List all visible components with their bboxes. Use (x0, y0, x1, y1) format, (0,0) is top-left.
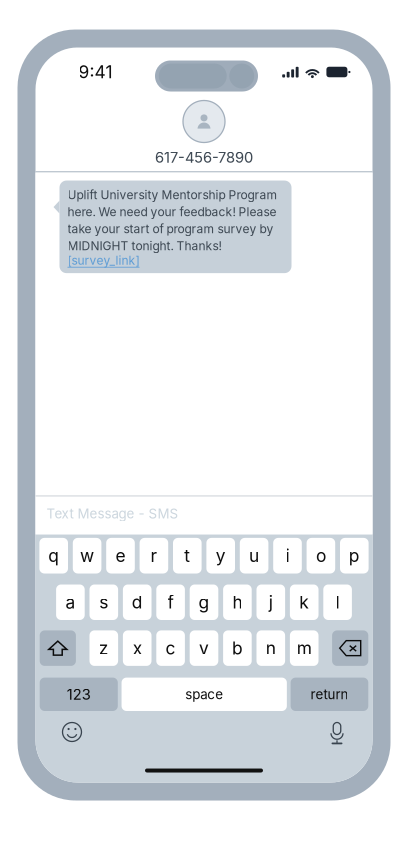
button[interactable]: t (173, 538, 202, 573)
staticText: return (310, 686, 348, 702)
button[interactable]: k (290, 584, 318, 620)
button[interactable]: Delete (332, 630, 368, 666)
button[interactable]: v (190, 630, 218, 666)
staticText: w (80, 545, 94, 566)
staticText: j (269, 592, 273, 613)
button[interactable]: p (340, 538, 369, 573)
staticText: d (132, 592, 143, 613)
staticText: a (65, 592, 75, 613)
button[interactable]: g (190, 584, 218, 620)
button[interactable]: r (140, 538, 168, 573)
button[interactable]: i (273, 538, 302, 573)
button[interactable]: y (206, 538, 235, 573)
staticText: g (198, 592, 209, 613)
button[interactable]: n (256, 630, 285, 666)
button[interactable]: Dictate (328, 720, 345, 744)
button[interactable]: Shift (40, 630, 76, 666)
staticText: v (199, 638, 209, 659)
button[interactable]: f (156, 584, 185, 620)
button[interactable]: q (39, 538, 68, 573)
button[interactable]: h (223, 584, 252, 620)
button[interactable]: z (89, 630, 118, 666)
staticText: z (99, 638, 109, 659)
staticText: s (99, 592, 108, 613)
button[interactable]: space (121, 678, 287, 711)
button[interactable]: return (291, 678, 368, 711)
button[interactable]: a (56, 584, 85, 620)
staticText: o (316, 545, 326, 566)
staticText: i (285, 545, 289, 566)
staticText: r (150, 545, 157, 566)
staticText: space (185, 686, 223, 702)
button[interactable]: c (156, 630, 185, 666)
staticText: 123 (67, 685, 91, 703)
button[interactable]: l (323, 584, 352, 620)
staticText: k (299, 592, 309, 613)
staticText: 617-456-7890 (155, 148, 253, 166)
staticText: Uplift University Mentorship Program her… (67, 187, 277, 253)
staticText: l (336, 592, 340, 613)
button[interactable]: d (123, 584, 151, 620)
button[interactable]: u (240, 538, 268, 573)
staticText: u (249, 545, 259, 566)
button[interactable]: b (223, 630, 252, 666)
staticText: 9:41 (78, 61, 112, 82)
staticText: Text Message - SMS (46, 505, 178, 522)
button[interactable]: j (256, 584, 285, 620)
staticText: [survey_link] (67, 253, 139, 268)
staticText: y (216, 545, 226, 566)
staticText: t (184, 545, 190, 566)
staticText: p (349, 545, 360, 566)
staticText: n (266, 638, 276, 659)
button[interactable]: w (73, 538, 101, 573)
staticText: e (115, 545, 125, 566)
button[interactable]: x (123, 630, 151, 666)
staticText: q (48, 545, 59, 566)
staticText: f (168, 592, 174, 613)
button[interactable]: Emoji (61, 721, 82, 742)
staticText: x (133, 638, 142, 659)
button[interactable]: e (106, 538, 135, 573)
staticText: c (166, 638, 176, 659)
button[interactable]: s (89, 584, 118, 620)
staticText: b (232, 638, 243, 659)
button[interactable]: o (307, 538, 335, 573)
staticText: m (297, 638, 312, 659)
staticText: h (232, 592, 242, 613)
button[interactable]: 123 (40, 678, 118, 711)
button[interactable]: m (290, 630, 318, 666)
